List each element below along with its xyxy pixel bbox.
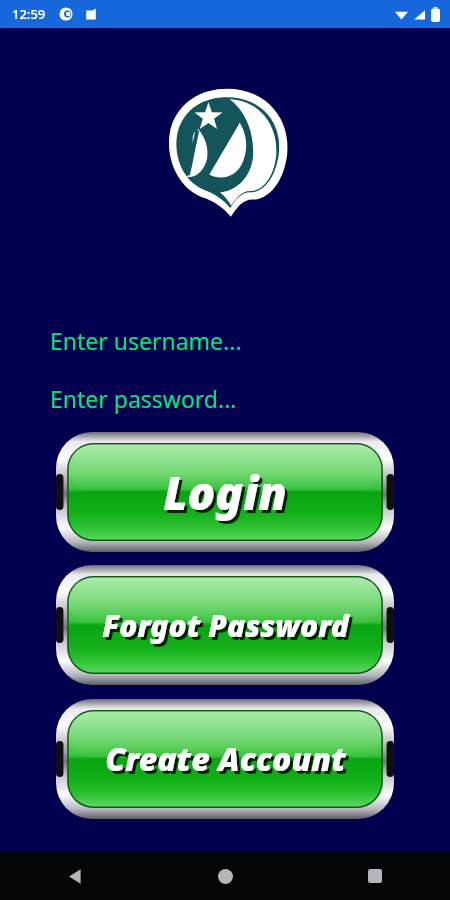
staticText: Login (163, 461, 287, 524)
button[interactable]: Enter password... (40, 376, 340, 420)
staticText: 12:59 (12, 5, 46, 23)
button[interactable]: Back (0, 852, 150, 900)
button[interactable]: Recent apps (300, 852, 450, 900)
button[interactable]: Enter username... (40, 318, 340, 362)
button[interactable]: Forgot Password (56, 565, 394, 685)
button[interactable]: Login (56, 432, 394, 552)
button[interactable]: Create Account (56, 699, 394, 819)
button[interactable]: Home (150, 852, 300, 900)
staticText: Forgot Password (105, 608, 352, 649)
staticText: Forgot Password (102, 605, 349, 646)
staticText: Enter password... (50, 383, 237, 414)
staticText: Login (166, 464, 290, 527)
staticText: Enter username... (50, 325, 242, 356)
staticText: Create Account (108, 740, 349, 784)
staticText: Create Account (105, 737, 346, 781)
